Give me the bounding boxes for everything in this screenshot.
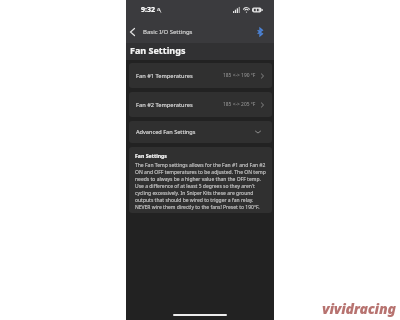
button[interactable]: Back [126, 20, 143, 43]
staticText: vividracing [322, 299, 396, 318]
button[interactable]: Bluetooth [245, 20, 274, 43]
staticText: Fan #1 Temperatures [136, 72, 193, 80]
staticText: outputs that should be wired to trigger … [135, 197, 254, 204]
button[interactable]: Fan #2 Temperatures [129, 92, 272, 117]
staticText: needs to always be a higher value than t… [135, 176, 261, 183]
button[interactable]: Advanced Fan Settings [129, 121, 272, 143]
staticText: 185 <-> 205 °F [223, 101, 256, 108]
staticText: Advanced Fan Settings [136, 128, 196, 136]
staticText: cycling excessively. In Sniper Kits thes… [135, 190, 254, 197]
staticText: Fan #2 Temperatures [136, 101, 193, 109]
staticText: The Fan Temp settings allows for the Fan… [135, 162, 266, 169]
button[interactable]: Fan #1 Temperatures [129, 63, 272, 88]
staticText: ON and OFF temperatures to be adjusted. … [135, 169, 266, 176]
staticText: Fan Settings [135, 152, 167, 159]
staticText: Use a difference of at least 5 degrees s… [135, 183, 255, 190]
staticText: 185 <-> 190 °F [223, 72, 256, 79]
staticText: Fan Settings [130, 44, 186, 56]
staticText: NEVER wire them directly to the fans! Pr… [135, 204, 260, 211]
staticText: Basic I/O Settings [143, 28, 193, 36]
staticText: 9:32 [141, 5, 155, 15]
